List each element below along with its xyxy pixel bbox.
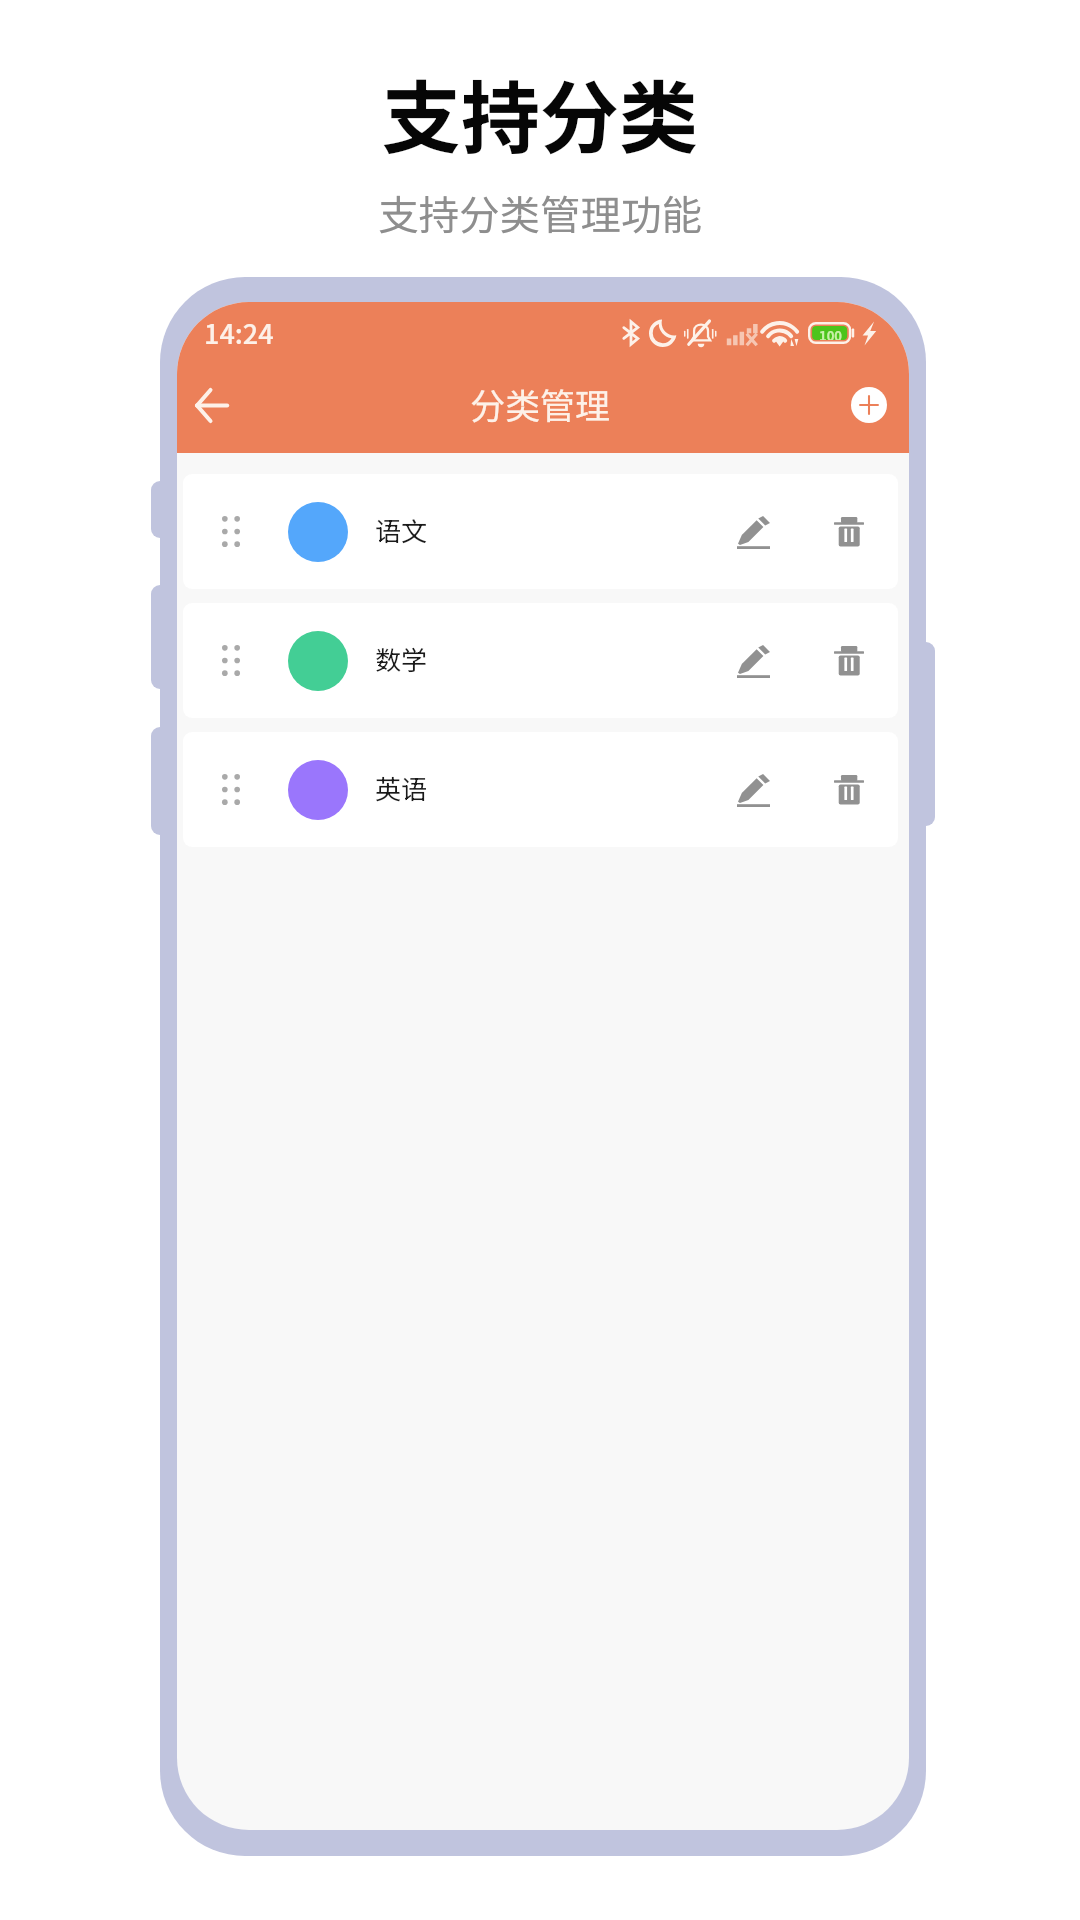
button[interactable]: 英语 — [183, 732, 898, 847]
button[interactable]: 数学 — [183, 603, 898, 718]
button[interactable]: Delete — [813, 754, 885, 826]
staticText: 分类管理 — [470, 378, 611, 429]
staticText: 数学 — [375, 640, 428, 678]
button[interactable]: Delete — [813, 625, 885, 697]
button[interactable]: 语文 — [183, 474, 898, 589]
staticText: 100 — [819, 326, 843, 340]
button[interactable]: Edit — [717, 625, 789, 697]
staticText: 语文 — [375, 511, 428, 549]
button[interactable]: Edit — [717, 754, 789, 826]
button[interactable]: Edit — [717, 496, 789, 568]
staticText: 14:24 — [204, 313, 274, 352]
button[interactable]: Back — [178, 372, 244, 438]
staticText: 支持分类管理功能 — [378, 183, 702, 242]
button[interactable]: Add category — [839, 375, 899, 435]
staticText: 支持分类 — [382, 55, 698, 169]
button[interactable]: Delete — [813, 496, 885, 568]
staticText: 英语 — [375, 769, 428, 807]
